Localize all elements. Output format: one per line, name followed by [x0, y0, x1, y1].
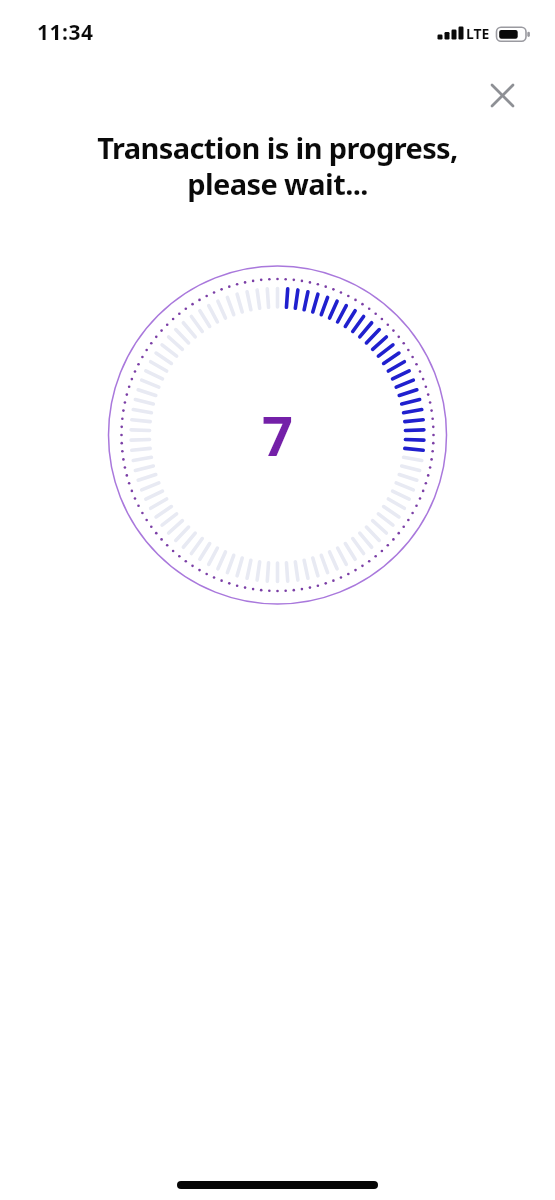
staticText: 7 — [262, 398, 293, 472]
staticText: LTE — [466, 24, 490, 43]
button[interactable] — [487, 80, 518, 111]
staticText: 11:34 — [37, 18, 94, 47]
staticText: Transaction is in progress, please wait.… — [0, 128, 555, 204]
